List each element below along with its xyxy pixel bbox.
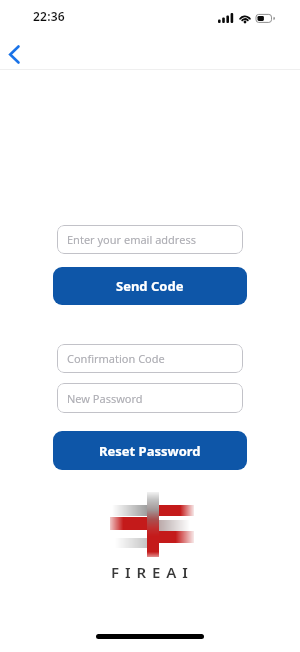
- button[interactable]: Send Code: [53, 267, 247, 305]
- staticText: Enter your email address: [67, 232, 196, 247]
- button[interactable]: Confirmation Code: [57, 344, 243, 373]
- staticText: Confirmation Code: [67, 351, 165, 366]
- staticText: Reset Password: [99, 442, 201, 460]
- button[interactable]: Reset Password: [53, 431, 247, 470]
- staticText: F I R E A I: [0, 562, 300, 582]
- button[interactable]: Enter your email address: [57, 225, 243, 254]
- staticText: 22:36: [33, 8, 65, 24]
- staticText: New Password: [67, 391, 143, 406]
- button[interactable]: New Password: [57, 383, 243, 413]
- staticText: Send Code: [116, 277, 184, 295]
- button[interactable]: [0, 40, 28, 68]
